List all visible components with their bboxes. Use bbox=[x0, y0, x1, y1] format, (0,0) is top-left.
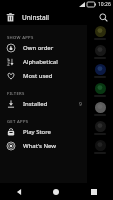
staticText: GET APPS bbox=[7, 119, 29, 125]
staticText: Most used bbox=[23, 72, 53, 80]
staticText: Own order bbox=[23, 44, 54, 52]
staticText: Play Store bbox=[23, 128, 51, 136]
staticText: 10:26 bbox=[98, 1, 111, 8]
button[interactable]: Uninstall bbox=[0, 9, 93, 25]
button[interactable]: Most used bbox=[0, 69, 87, 83]
staticText: SHOW APPS bbox=[7, 35, 34, 41]
button[interactable]: Home bbox=[37, 183, 75, 200]
staticText: Uninstall bbox=[22, 13, 49, 22]
button[interactable]: Play Store bbox=[0, 125, 87, 139]
button[interactable]: Search bbox=[93, 9, 113, 25]
button[interactable]: Installed bbox=[0, 97, 87, 111]
button[interactable]: Alphabetical bbox=[0, 55, 87, 69]
staticText: FILTERS bbox=[7, 91, 25, 97]
button[interactable]: Own order bbox=[0, 41, 87, 55]
staticText: Alphabetical bbox=[23, 58, 58, 66]
staticText: 9 bbox=[79, 101, 82, 108]
staticText: Installed bbox=[23, 100, 48, 108]
button[interactable]: Back bbox=[0, 183, 37, 200]
staticText: What's New bbox=[23, 142, 57, 150]
button[interactable]: Recent apps bbox=[75, 183, 113, 200]
button[interactable]: What's New bbox=[0, 139, 87, 153]
